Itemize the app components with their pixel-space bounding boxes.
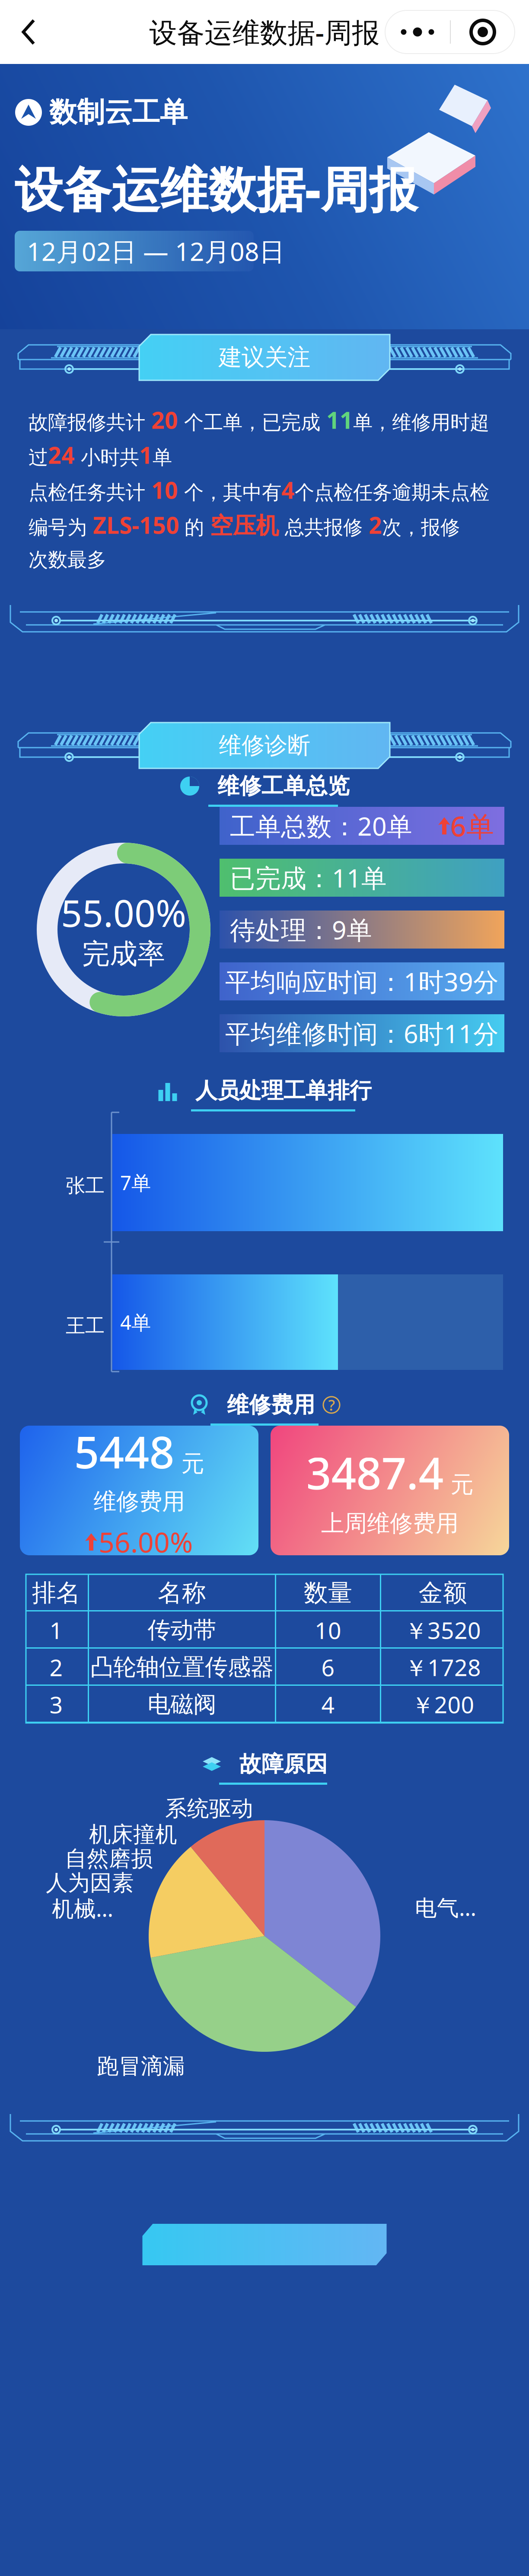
staticText: 设备运维数据-周报 [149, 14, 380, 50]
staticText: 金额 [419, 1578, 467, 1608]
staticText: 凸轮轴位置传感器 [90, 1653, 274, 1681]
button[interactable]: More [385, 10, 450, 54]
staticText: ? [328, 1395, 335, 1415]
staticText: 12月02日 — 12月08日 [27, 234, 285, 268]
staticText: 排名 [32, 1578, 80, 1608]
button[interactable]: Close [451, 10, 515, 54]
staticText: 2 [49, 1652, 63, 1683]
staticText: 过24 小时共1单 [29, 440, 172, 470]
staticText: 6单 [450, 807, 494, 844]
staticText: 上周维修费用 [321, 1509, 459, 1538]
staticText: 已完成：11单 [230, 861, 387, 894]
staticText: 编号为 ZLS-150 的 空压机 总共报修 2次，报修 [29, 510, 460, 540]
staticText: 电气… [415, 1893, 476, 1922]
staticText: 6 [321, 1652, 335, 1683]
staticText: 维修工单总览 [217, 773, 350, 800]
staticText: 跑冒滴漏 [97, 2053, 185, 2080]
staticText: 点检任务共计 10 个，其中有4个点检任务逾期未点检 [29, 475, 489, 505]
staticText: 平均维修时间：6时11分 [225, 1016, 499, 1050]
staticText: 7单 [120, 1170, 151, 1196]
staticText: 5448 元 [74, 1422, 204, 1481]
staticText: 机械… [52, 1894, 113, 1923]
staticText: 3487.4 元 [306, 1443, 473, 1502]
staticText: 3 [49, 1689, 63, 1720]
staticText: ￥200 [411, 1689, 474, 1720]
staticText: 55.00% [61, 888, 186, 937]
staticText: 平均响应时间：1时39分 [225, 965, 499, 998]
staticText: 故障报修共计 20 个工单，已完成 11单，维修用时超 [29, 405, 489, 435]
staticText: 传动带 [148, 1616, 216, 1644]
staticText: 工单总数：20单 [230, 809, 412, 843]
staticText: 4 [321, 1689, 335, 1720]
staticText: 完成率 [82, 937, 165, 971]
staticText: 1 [49, 1615, 63, 1645]
staticText: 人为因素 [46, 1869, 134, 1896]
staticText: 56.00% [99, 1524, 193, 1560]
staticText: 维修费用 [227, 1391, 315, 1418]
staticText: 系统驱动 [165, 1795, 253, 1822]
staticText: ￥3520 [405, 1615, 481, 1645]
staticText: 数量 [304, 1578, 352, 1608]
staticText: 维修费用 [93, 1487, 185, 1516]
staticText: 电磁阀 [148, 1690, 216, 1719]
staticText: 名称 [158, 1578, 206, 1608]
staticText: 10 [315, 1615, 341, 1645]
staticText: 维修诊断 [219, 731, 310, 760]
staticText: 王工 [66, 1314, 105, 1338]
staticText: 张工 [66, 1174, 105, 1198]
staticText: 故障原因 [239, 1751, 328, 1777]
button[interactable]: Back [0, 5, 54, 59]
staticText: 数制云工单 [49, 95, 188, 129]
staticText: ￥1728 [405, 1652, 481, 1683]
staticText: 4单 [120, 1309, 151, 1335]
staticText: 自然磨损 [65, 1845, 153, 1872]
staticText: 机床撞机 [89, 1821, 177, 1848]
staticText: 次数最多 [29, 548, 106, 572]
staticText: 待处理：9单 [230, 913, 372, 946]
staticText: 建议关注 [219, 343, 310, 372]
staticText: 设备运维数据-周报 [15, 156, 417, 221]
staticText: 人员处理工单排行 [195, 1077, 372, 1104]
